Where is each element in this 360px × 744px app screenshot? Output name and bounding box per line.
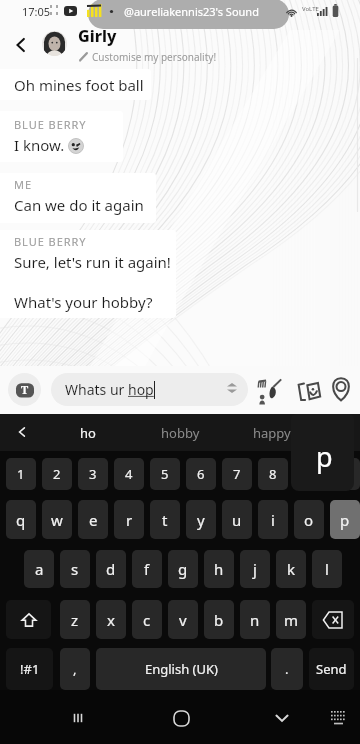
button[interactable]: v	[168, 600, 198, 639]
staticText: BLUE BERRY	[14, 117, 87, 132]
button[interactable]: c	[132, 600, 162, 639]
staticText: n	[250, 610, 260, 630]
button[interactable]: s	[60, 550, 90, 588]
staticText: w	[51, 510, 63, 530]
button[interactable]: Previous	[12, 422, 32, 442]
button[interactable]: Switch keyboard	[324, 704, 352, 732]
button[interactable]: t	[150, 500, 180, 539]
button[interactable]: Back	[8, 32, 34, 58]
button[interactable]: x	[96, 600, 126, 639]
staticText: s	[71, 559, 79, 579]
staticText: l	[325, 559, 329, 579]
staticText: u	[232, 510, 242, 530]
button[interactable]: 7	[222, 458, 252, 490]
button[interactable]: 0	[330, 458, 360, 490]
button[interactable]: j	[240, 550, 270, 588]
staticText: p	[340, 510, 350, 530]
button[interactable]: back	[312, 600, 354, 639]
button[interactable]: Location	[326, 374, 356, 404]
staticText: ME	[14, 177, 32, 192]
staticText: T	[21, 382, 29, 397]
button[interactable]: 2	[42, 458, 72, 490]
staticText: Sure, let's run it again!	[14, 252, 171, 272]
button[interactable]: m	[276, 600, 306, 639]
button[interactable]: i	[258, 500, 288, 539]
button[interactable]: h	[204, 550, 234, 588]
staticText: o	[304, 510, 314, 530]
button[interactable]: e	[78, 500, 108, 539]
staticText: 4	[125, 465, 133, 483]
button[interactable]: Recents	[64, 704, 92, 732]
staticText: y	[197, 510, 205, 530]
staticText: English (UK)	[145, 660, 218, 678]
button[interactable]: Home	[167, 704, 195, 732]
button[interactable]: l	[312, 550, 342, 588]
staticText: 17:05	[22, 4, 51, 19]
button[interactable]: z	[60, 600, 90, 639]
staticText: @aureliakennis23's Sound	[124, 4, 259, 19]
staticText: k	[287, 559, 296, 579]
button[interactable]: Oh mines foot ball	[0, 69, 151, 100]
button[interactable]: 3	[78, 458, 108, 490]
staticText: .	[285, 660, 289, 678]
button[interactable]: 4	[114, 458, 144, 490]
button[interactable]: 1	[6, 458, 36, 490]
staticText: p	[316, 438, 333, 475]
staticText: Whats ur	[65, 380, 128, 399]
staticText: d	[106, 559, 116, 579]
staticText: I know.	[14, 135, 69, 155]
staticText: x	[107, 610, 115, 630]
staticText: happy	[253, 424, 291, 442]
button[interactable]: shift	[6, 600, 51, 639]
button[interactable]: BLUE BERRY	[0, 230, 176, 318]
button[interactable]: 5	[150, 458, 180, 490]
button[interactable]: n	[240, 600, 270, 639]
staticText: i	[271, 510, 275, 530]
button[interactable]: d	[96, 550, 126, 588]
button[interactable]: f	[132, 550, 162, 588]
staticText: 3	[89, 465, 97, 483]
button[interactable]: 8	[258, 458, 288, 490]
button[interactable]: Bitmoji	[295, 378, 323, 406]
button[interactable]: Stickers	[256, 378, 284, 406]
button[interactable]: ,	[60, 648, 90, 690]
button[interactable]: w	[42, 500, 72, 539]
staticText: g	[178, 559, 188, 579]
button[interactable]: Hide keyboard	[268, 704, 296, 732]
staticText: r	[126, 510, 133, 530]
staticText: b	[214, 610, 224, 630]
button[interactable]: 6	[186, 458, 216, 490]
button[interactable]: k	[276, 550, 306, 588]
staticText: j	[253, 559, 257, 579]
button[interactable]: !#1	[6, 648, 53, 690]
staticText: Can we do it again	[14, 195, 144, 215]
staticText: Send	[316, 660, 347, 678]
button[interactable]: y	[186, 500, 216, 539]
staticText: 8	[269, 465, 277, 483]
staticText: Girly	[78, 25, 117, 47]
button[interactable]: r	[114, 500, 144, 539]
button[interactable]: Whats ur	[51, 373, 248, 406]
button[interactable]: ho	[58, 414, 118, 451]
staticText: h	[214, 559, 224, 579]
button[interactable]: g	[168, 550, 198, 588]
staticText: VoLTE	[302, 5, 319, 13]
button[interactable]: Text style	[8, 373, 41, 406]
button[interactable]: a	[24, 550, 54, 588]
button[interactable]: o	[294, 500, 324, 539]
staticText: hop	[128, 380, 154, 399]
staticText: 6	[197, 465, 205, 483]
button[interactable]: BLUE BERRY	[0, 111, 123, 162]
button[interactable]: p	[330, 500, 360, 539]
staticText: c	[143, 610, 151, 630]
button[interactable]: b	[204, 600, 234, 639]
button[interactable]: happy	[242, 414, 302, 451]
button[interactable]: ME	[0, 173, 156, 223]
button[interactable]: Send	[309, 648, 354, 690]
button[interactable]: q	[6, 500, 36, 539]
button[interactable]: u	[222, 500, 252, 539]
button[interactable]: hobby	[150, 414, 210, 451]
button[interactable]: 9	[294, 458, 324, 490]
button[interactable]: .	[271, 648, 303, 690]
button[interactable]: English (UK)	[96, 648, 266, 690]
